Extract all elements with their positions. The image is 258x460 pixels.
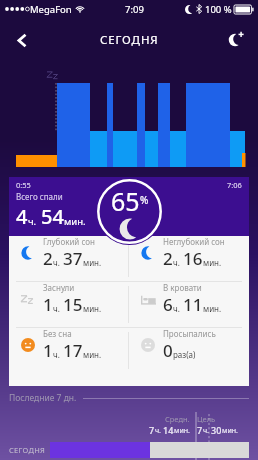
staticText: Просыпались [163,328,216,339]
staticText: мин. [203,303,222,314]
staticText: 54 [41,203,64,230]
staticText: 65 [111,184,140,218]
staticText: мин. [83,349,102,360]
staticText: Средн. [165,414,190,424]
staticText: 0:55 [16,180,31,190]
button[interactable]: Просыпались [129,328,249,362]
button[interactable]: Без сна [9,328,128,362]
staticText: 30 [211,424,222,436]
staticText: ч. [53,303,60,314]
staticText: ч. [53,349,60,360]
staticText: 2 [43,247,53,270]
button[interactable]: Глубокий сон [9,236,128,270]
staticText: ч. [203,426,209,436]
staticText: ч. [173,303,180,314]
button[interactable]: СЕГОДНЯ [0,442,258,458]
staticText: 7:06 [227,180,242,190]
staticText: 1 [43,293,53,316]
staticText: раз(а) [173,349,196,360]
staticText: Цель [197,414,216,424]
staticText: мин. [83,303,102,314]
staticText: СЕГОДНЯ [9,445,46,455]
staticText: мин. [83,257,102,268]
staticText: 2 [163,247,173,270]
staticText: 16 [183,247,203,270]
staticText: 11 [183,293,203,316]
staticText: В кровати [163,282,202,293]
button[interactable]: Back [5,23,39,57]
staticText: 6 [163,293,173,316]
button[interactable]: Неглубокий сон [129,236,249,270]
staticText: мин. [222,426,238,436]
staticText: 15 [63,293,83,316]
staticText: 37 [63,247,83,270]
staticText: Без сна [43,328,72,339]
staticText: 14 [163,424,174,436]
button[interactable]: Заснули [9,282,128,316]
staticText: мин. [203,257,222,268]
staticText: ч. [155,426,161,436]
staticText: Всего спали [16,191,63,202]
staticText: 7 [197,424,203,436]
staticText: ч. [173,257,180,268]
staticText: % [140,193,149,207]
staticText: 0 [163,339,173,362]
staticText: ч. [53,257,60,268]
button[interactable]: В кровати [129,282,249,316]
staticText: Неглубокий сон [163,236,225,247]
staticText: MegaFon [30,3,72,16]
staticText: мин. [64,215,86,228]
staticText: СЕГОДНЯ [100,32,159,48]
staticText: 4 [16,203,28,230]
staticText: мин. [174,426,190,436]
staticText: 7:09 [125,3,144,16]
staticText: 7 [149,424,155,436]
staticText: Глубокий сон [43,236,95,247]
staticText: Последние 7 дн. [9,392,77,404]
staticText: 100 % [205,3,232,16]
staticText: 17 [63,339,83,362]
staticText: ч. [28,215,37,228]
staticText: 1 [43,339,53,362]
staticText: Заснули [43,282,75,293]
button[interactable]: Add sleep session [219,24,251,56]
